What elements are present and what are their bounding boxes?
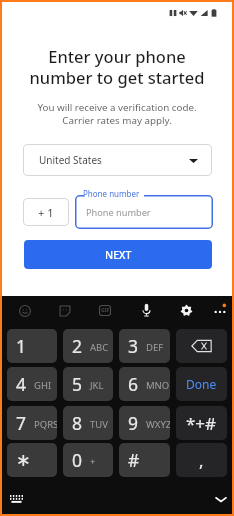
- staticText: 7: [16, 411, 27, 435]
- button[interactable]: Settings: [175, 299, 197, 321]
- button[interactable]: *+#: [176, 406, 227, 440]
- button[interactable]: Phone number: [75, 185, 213, 229]
- button[interactable]: Emoji: [14, 300, 35, 321]
- button[interactable]: 2: [63, 329, 113, 363]
- staticText: 6: [128, 372, 139, 396]
- button[interactable]: Hide keyboard: [209, 487, 233, 511]
- staticText: 0: [72, 448, 83, 472]
- staticText: Phone number: [83, 188, 140, 199]
- staticText: 5: [72, 372, 83, 396]
- staticText: + 1: [38, 205, 54, 220]
- staticText: GHI: [34, 379, 52, 392]
- staticText: 4: [16, 372, 27, 396]
- staticText: You will receive a verification code. Ca…: [2, 101, 232, 127]
- staticText: United States: [39, 153, 102, 167]
- button[interactable]: Switch keyboard: [4, 487, 28, 511]
- button[interactable]: ,: [176, 443, 227, 477]
- staticText: ∗: [16, 450, 31, 470]
- other: Backspace: [191, 339, 212, 353]
- button[interactable]: 0: [63, 443, 113, 477]
- staticText: TUV: [90, 418, 108, 431]
- staticText: ,: [199, 449, 204, 472]
- staticText: +: [90, 455, 96, 468]
- button[interactable]: Done: [176, 367, 227, 401]
- button[interactable]: GIF: [94, 300, 115, 321]
- staticText: WXYZ: [146, 418, 170, 431]
- button[interactable]: 5: [63, 367, 113, 401]
- staticText: GIF: [101, 307, 110, 314]
- staticText: DEF: [146, 341, 164, 354]
- staticText: Phone number: [86, 206, 151, 219]
- staticText: *+#: [186, 412, 217, 435]
- staticText: 3: [128, 334, 139, 358]
- button[interactable]: 7: [7, 406, 57, 440]
- button[interactable]: More options: [208, 297, 232, 321]
- staticText: #: [128, 448, 140, 472]
- staticText: NEXT: [105, 248, 132, 262]
- staticText: 2: [72, 334, 83, 358]
- button[interactable]: Voice input: [135, 299, 157, 321]
- button[interactable]: Stickers: [54, 300, 75, 321]
- button[interactable]: NEXT: [24, 240, 212, 269]
- button[interactable]: 1: [7, 329, 57, 363]
- button[interactable]: + 1: [23, 198, 69, 226]
- button[interactable]: 4: [7, 367, 57, 401]
- button[interactable]: 3: [119, 329, 170, 363]
- staticText: JKL: [90, 379, 104, 392]
- button[interactable]: #: [119, 443, 170, 477]
- button[interactable]: Backspace: [176, 329, 227, 363]
- button[interactable]: ∗: [7, 443, 57, 477]
- button[interactable]: 8: [63, 406, 113, 440]
- staticText: 9: [128, 411, 139, 435]
- staticText: Enter your phone number to get started: [2, 45, 232, 89]
- staticText: 1: [16, 334, 27, 358]
- staticText: ABC: [90, 341, 109, 354]
- button[interactable]: United States: [23, 144, 212, 176]
- staticText: 8: [72, 411, 83, 435]
- staticText: Done: [186, 376, 217, 392]
- button[interactable]: 9: [119, 406, 170, 440]
- staticText: PQRS: [34, 418, 57, 431]
- button[interactable]: 6: [119, 367, 170, 401]
- staticText: MNO: [146, 379, 170, 392]
